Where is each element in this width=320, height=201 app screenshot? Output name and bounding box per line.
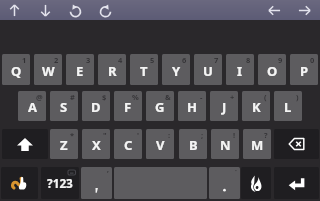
button[interactable]: : <box>146 129 174 159</box>
staticText: ˙ <box>235 168 237 178</box>
button[interactable]: 2 <box>34 54 62 85</box>
button[interactable]: + <box>210 91 238 121</box>
staticText: 2 <box>54 55 59 65</box>
staticText: 0 <box>310 55 315 65</box>
staticText: ) <box>296 92 299 102</box>
staticText: J <box>222 98 227 116</box>
staticText: B <box>189 136 198 154</box>
button[interactable]: ?123 <box>41 167 79 199</box>
button[interactable]: Delete <box>274 129 319 159</box>
staticText: : <box>168 130 171 140</box>
staticText: S <box>60 98 68 116</box>
staticText: 8 <box>246 55 251 65</box>
button[interactable]: @ <box>18 91 46 121</box>
staticText: Q <box>11 62 22 80</box>
button[interactable]: Comma <box>81 167 112 199</box>
button[interactable]: ? <box>243 129 271 159</box>
button[interactable]: Period <box>209 167 240 199</box>
staticText: V <box>156 136 165 154</box>
button[interactable]: * <box>50 129 78 159</box>
button[interactable]: Move down <box>30 0 60 20</box>
staticText: - <box>200 92 203 102</box>
button[interactable]: Enter <box>274 167 319 199</box>
staticText: 5 <box>150 55 155 65</box>
staticText: $ <box>102 92 107 102</box>
staticText: * <box>70 130 75 140</box>
button[interactable]: 9 <box>258 54 286 85</box>
staticText: % <box>132 92 139 102</box>
staticText: O <box>267 62 278 80</box>
button[interactable]: Gesture typing <box>1 167 38 199</box>
button[interactable]: 6 <box>162 54 190 85</box>
staticText: F <box>124 98 132 116</box>
staticText: H <box>187 98 197 116</box>
staticText: 7 <box>214 55 219 65</box>
staticText: 3 <box>86 55 91 65</box>
staticText: Y <box>172 62 181 80</box>
staticText: ’ <box>107 168 109 178</box>
staticText: W <box>42 62 55 80</box>
button[interactable]: " <box>82 129 110 159</box>
button[interactable]: 1 <box>2 54 30 85</box>
button[interactable]: Shift <box>2 129 48 159</box>
staticText: ! <box>233 130 236 140</box>
button[interactable]: ! <box>211 129 239 159</box>
staticText: ? <box>264 130 268 140</box>
staticText: C <box>124 136 133 154</box>
staticText: I <box>237 62 243 80</box>
staticText: ; <box>201 130 204 140</box>
staticText: & <box>165 92 171 102</box>
staticText: ' <box>137 130 139 140</box>
button[interactable]: ( <box>242 91 270 121</box>
button[interactable]: Move right <box>289 0 319 20</box>
staticText: M <box>251 136 264 154</box>
button[interactable]: # <box>50 91 78 121</box>
button[interactable]: ) <box>274 91 302 121</box>
staticText: ( <box>264 92 267 102</box>
staticText: Z <box>60 136 68 154</box>
button[interactable]: 7 <box>194 54 222 85</box>
button[interactable]: Undo <box>60 0 90 20</box>
staticText: 6 <box>182 55 187 65</box>
button[interactable]: % <box>114 91 142 121</box>
button[interactable]: ; <box>179 129 207 159</box>
staticText: U <box>203 62 213 80</box>
staticText: 4 <box>118 55 123 65</box>
button[interactable]: 0 <box>290 54 318 85</box>
staticText: A <box>28 98 37 116</box>
staticText: X <box>92 136 101 154</box>
staticText: K <box>252 98 261 116</box>
staticText: T <box>140 62 148 80</box>
staticText: 1 <box>22 55 27 65</box>
button[interactable]: - <box>178 91 206 121</box>
staticText: ?123 <box>47 175 73 191</box>
staticText: " <box>103 130 107 140</box>
button[interactable]: & <box>146 91 174 121</box>
staticText: + <box>230 92 235 102</box>
button[interactable]: Redo <box>90 0 120 20</box>
button[interactable]: 4 <box>98 54 126 85</box>
staticText: R <box>108 62 117 80</box>
button[interactable]: 8 <box>226 54 254 85</box>
staticText: L <box>284 98 292 116</box>
staticText: D <box>91 98 101 116</box>
button[interactable]: Move left <box>259 0 289 20</box>
button[interactable]: ' <box>114 129 142 159</box>
button[interactable]: $ <box>82 91 110 121</box>
staticText: 9 <box>278 55 283 65</box>
button[interactable]: 5 <box>130 54 158 85</box>
button[interactable]: Move up <box>0 0 29 20</box>
staticText: P <box>300 62 309 80</box>
staticText: # <box>70 92 75 102</box>
staticText: @ <box>36 92 43 102</box>
staticText: G <box>155 98 165 116</box>
button[interactable]: 3 <box>66 54 94 85</box>
staticText: N <box>220 136 231 154</box>
staticText: E <box>76 62 84 80</box>
button[interactable]: Emoji <box>241 167 271 199</box>
